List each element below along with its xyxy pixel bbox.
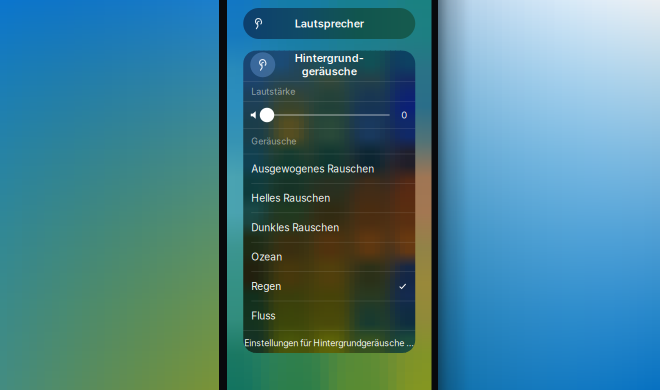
staticText: Lautsprecher: [295, 17, 364, 30]
staticText: Hintergrund-: [295, 51, 364, 65]
button[interactable]: Einstellungen für Hintergrundgeräusche …: [243, 331, 415, 355]
staticText: Ozean: [251, 251, 282, 263]
staticText: Ausgewogenes Rauschen: [251, 163, 374, 175]
staticText: Einstellungen für Hintergrundgeräusche …: [244, 338, 414, 348]
button[interactable]: Regen: [243, 272, 415, 301]
staticText: 0: [401, 109, 407, 121]
button[interactable]: Dunkles Rauschen: [243, 213, 415, 242]
staticText: Regen: [251, 280, 281, 292]
staticText: Lautstärke: [251, 86, 295, 97]
staticText: Helles Rauschen: [251, 192, 330, 204]
staticText: geräusche: [302, 65, 357, 78]
button[interactable]: Helles Rauschen: [243, 184, 415, 212]
button[interactable]: Ausgewogenes Rauschen: [243, 154, 415, 183]
button[interactable]: Fluss: [243, 301, 415, 330]
staticText: Dunkles Rauschen: [251, 221, 339, 234]
staticText: Fluss: [251, 310, 275, 322]
button[interactable]: Ozean: [243, 242, 415, 271]
staticText: Geräusche: [251, 136, 296, 146]
button[interactable]: Lautsprecher: [243, 8, 415, 39]
